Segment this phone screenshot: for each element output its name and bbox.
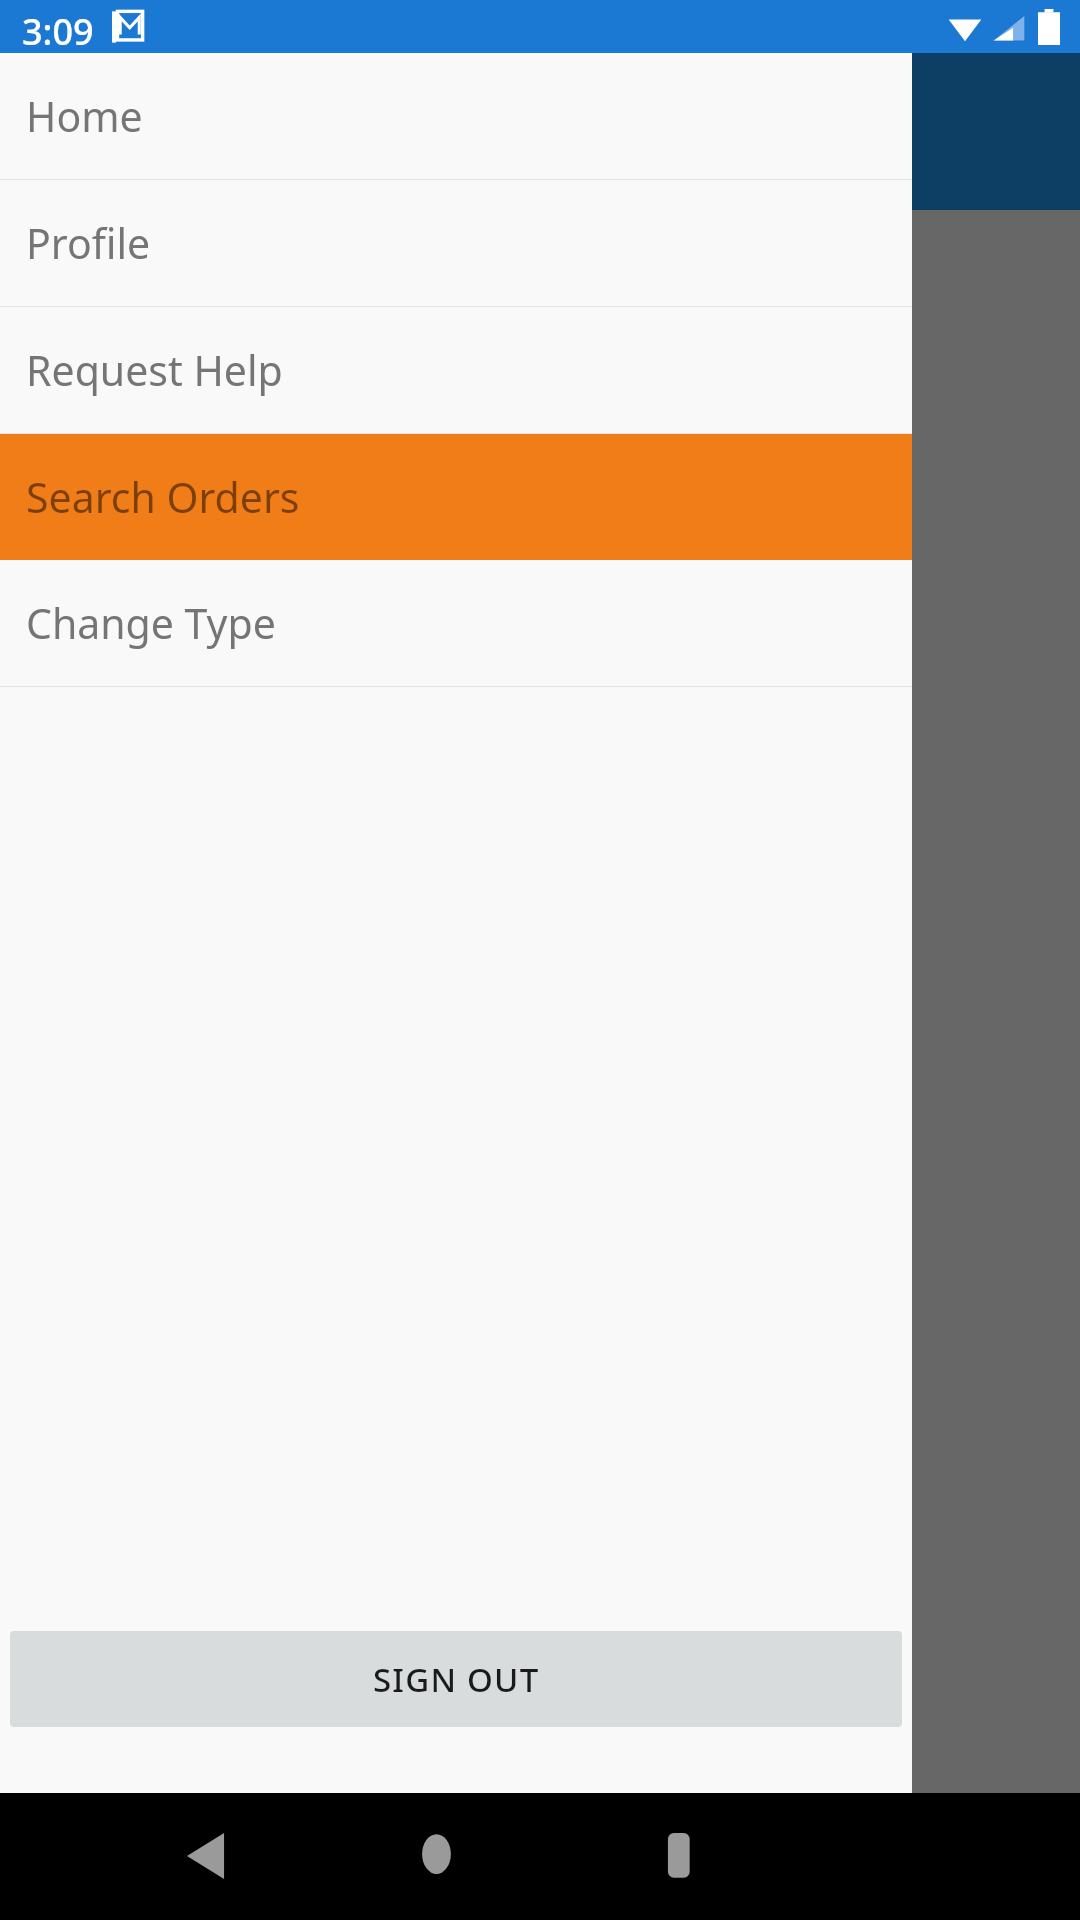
button[interactable]: SIGN OUT (10, 1631, 902, 1727)
button[interactable]: Profile (0, 180, 912, 306)
button[interactable]: Home (0, 53, 912, 179)
button[interactable]: Request Help (0, 307, 912, 433)
button[interactable]: Search Orders (0, 434, 912, 560)
staticText: Request Help (26, 342, 283, 398)
button[interactable]: Recents (650, 1824, 714, 1888)
staticText: Profile (26, 215, 151, 271)
button[interactable]: Action (905, 1637, 1017, 1730)
staticText: Search Orders (26, 469, 300, 525)
button[interactable]: Back (178, 1824, 242, 1888)
staticText: Change Type (26, 595, 276, 651)
button[interactable]: Change Type (0, 560, 912, 686)
staticText: SIGN OUT (373, 1657, 540, 1702)
staticText: Search (848, 222, 988, 282)
staticText: Home (26, 88, 143, 144)
staticText: 3:09 (22, 7, 94, 56)
button[interactable]: Home (408, 1824, 472, 1888)
